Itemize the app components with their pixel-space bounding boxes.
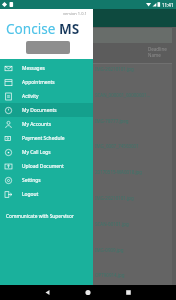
button[interactable]: IMG-0909.jpg	[95, 247, 176, 272]
other: Logout	[5, 191, 12, 198]
staticText: MS	[59, 19, 80, 38]
staticText: version 1.0.1	[63, 11, 87, 16]
staticText: 20170515-WA0018.jpg	[95, 169, 143, 175]
staticText: 11:41	[162, 2, 174, 8]
button[interactable]: IMG-20210101.jpg	[95, 195, 176, 220]
button[interactable]: Communicate with Supervisor	[6, 213, 93, 220]
button[interactable]: Messages	[0, 61, 93, 75]
button[interactable]: 20170515-WA0018.jpg	[95, 169, 176, 194]
staticText: SCAN-00101.jpg	[95, 221, 129, 227]
other: Messages	[5, 65, 12, 72]
staticText: IMG-20210101.jpg	[95, 195, 134, 201]
button[interactable]: Payment Schedule	[0, 131, 93, 145]
button[interactable]: Upload Document	[0, 159, 93, 173]
staticText: Messages	[22, 65, 45, 72]
staticText: My Documents	[22, 107, 57, 114]
button[interactable]: Settings	[0, 173, 93, 187]
staticText: Upload Document	[22, 163, 64, 170]
staticText: SCAN_000001_00000001...	[95, 92, 151, 98]
button[interactable]: IMG-78777.jpeg	[95, 118, 176, 143]
button[interactable]: My Accounts	[0, 117, 93, 131]
staticText: My Accounts	[22, 121, 52, 128]
staticText: My Call Logs	[22, 149, 51, 156]
staticText: Name	[148, 52, 161, 58]
staticText: Appointments	[22, 79, 55, 86]
button[interactable]: Logout	[0, 187, 93, 201]
staticText: Activity	[22, 93, 39, 100]
staticText: OPT90914.jpg	[95, 272, 125, 278]
other: Activity	[5, 93, 12, 100]
staticText: x77	[93, 26, 104, 34]
other: Upload Document	[5, 163, 12, 170]
staticText: IMG-20210101.jpg	[95, 66, 134, 72]
button[interactable]: IMG-20210101.jpg	[95, 66, 176, 91]
button[interactable]: OPT90914.jpg	[95, 272, 176, 297]
staticText: IMG_0007_74503001	[95, 143, 139, 149]
button[interactable]: Activity	[0, 89, 93, 103]
button[interactable]: IMG_0007_74503001	[95, 143, 176, 168]
staticText: Logout	[22, 191, 39, 198]
staticText: Deadline	[148, 46, 167, 52]
staticText: Payment Schedule	[22, 135, 65, 142]
button[interactable]: My Call Logs	[0, 145, 93, 159]
other: Appointments	[5, 79, 12, 86]
staticText: Settings	[22, 177, 41, 184]
other: Payment Schedule	[5, 135, 12, 142]
other: My Documents	[5, 107, 12, 114]
button[interactable]: My Documents	[0, 103, 93, 117]
other: My Accounts	[5, 121, 12, 128]
button[interactable]: Appointments	[0, 75, 93, 89]
button[interactable]: SCAN-00101.jpg	[95, 221, 176, 246]
other: My Call Logs	[5, 149, 12, 156]
button[interactable]: SCAN_000001_00000001...	[95, 92, 176, 117]
staticText: IMG-78777.jpeg	[95, 118, 129, 124]
staticText: Concise	[6, 19, 59, 38]
staticText: IMG-0909.jpg	[95, 247, 124, 253]
staticText: Communicate with Supervisor	[6, 213, 74, 220]
other: Settings	[5, 177, 12, 184]
